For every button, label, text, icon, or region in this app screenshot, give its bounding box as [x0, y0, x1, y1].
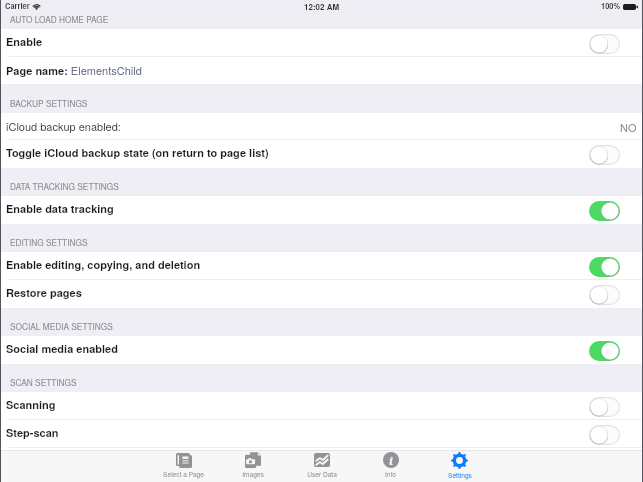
- staticText: 12:02 AM: [304, 1, 340, 12]
- staticText: Social media enabled: [6, 341, 118, 357]
- button[interactable]: Step-scan: [0, 420, 643, 448]
- staticText: Page name: ElementsChild: [6, 62, 142, 78]
- staticText: NO: [620, 119, 637, 135]
- button[interactable]: Social media enabled: [0, 336, 643, 364]
- button[interactable]: Toggle off: [589, 397, 620, 417]
- button[interactable]: Toggle off: [589, 34, 620, 54]
- button[interactable]: Toggle iCloud backup state (on return to…: [0, 140, 643, 168]
- staticText: Enable data tracking: [6, 201, 114, 217]
- button[interactable]: Toggle on: [589, 201, 620, 221]
- staticText: AUTO LOAD HOME PAGE: [10, 13, 109, 25]
- button[interactable]: Enable editing, copying, and deletion: [0, 252, 643, 280]
- staticText: Enable editing, copying, and deletion: [6, 257, 201, 273]
- button[interactable]: Page name: ElementsChild: [0, 57, 643, 84]
- button[interactable]: Enable: [0, 29, 643, 57]
- staticText: Select a Page: [163, 469, 204, 478]
- button[interactable]: Toggle off: [589, 145, 620, 165]
- staticText: Carrier: [5, 1, 30, 12]
- staticText: Scanning: [6, 397, 56, 413]
- staticText: Info: [385, 469, 396, 478]
- staticText: DATA TRACKING SETTINGS: [10, 180, 119, 192]
- button[interactable]: i: [356, 450, 425, 482]
- button[interactable]: Settings: [425, 450, 494, 482]
- staticText: BACKUP SETTINGS: [10, 97, 88, 109]
- button[interactable]: iCloud backup enabled:: [0, 113, 643, 140]
- staticText: Restore pages: [6, 285, 82, 301]
- button[interactable]: Scanning: [0, 392, 643, 420]
- staticText: iCloud backup enabled:: [6, 118, 121, 134]
- button[interactable]: Images: [218, 450, 287, 482]
- staticText: Enable: [6, 34, 43, 50]
- button[interactable]: Restore pages: [0, 280, 643, 308]
- staticText: i: [389, 453, 393, 468]
- button[interactable]: Toggle off: [589, 285, 620, 305]
- button[interactable]: Select a Page: [149, 450, 218, 482]
- button[interactable]: Toggle on: [589, 257, 620, 277]
- staticText: SOCIAL MEDIA SETTINGS: [10, 320, 113, 332]
- button[interactable]: User Data: [287, 450, 356, 482]
- staticText: Toggle iCloud backup state (on return to…: [6, 145, 269, 161]
- staticText: Settings: [448, 470, 472, 479]
- staticText: Images: [242, 469, 264, 478]
- button[interactable]: Enable data tracking: [0, 196, 643, 224]
- staticText: EDITING SETTINGS: [10, 236, 88, 248]
- staticText: User Data: [307, 469, 337, 478]
- button[interactable]: Toggle on: [589, 341, 620, 361]
- staticText: SCAN SETTINGS: [10, 376, 77, 388]
- staticText: 100%: [601, 1, 621, 12]
- staticText: Step-scan: [6, 425, 59, 441]
- button[interactable]: Toggle off: [589, 425, 620, 445]
